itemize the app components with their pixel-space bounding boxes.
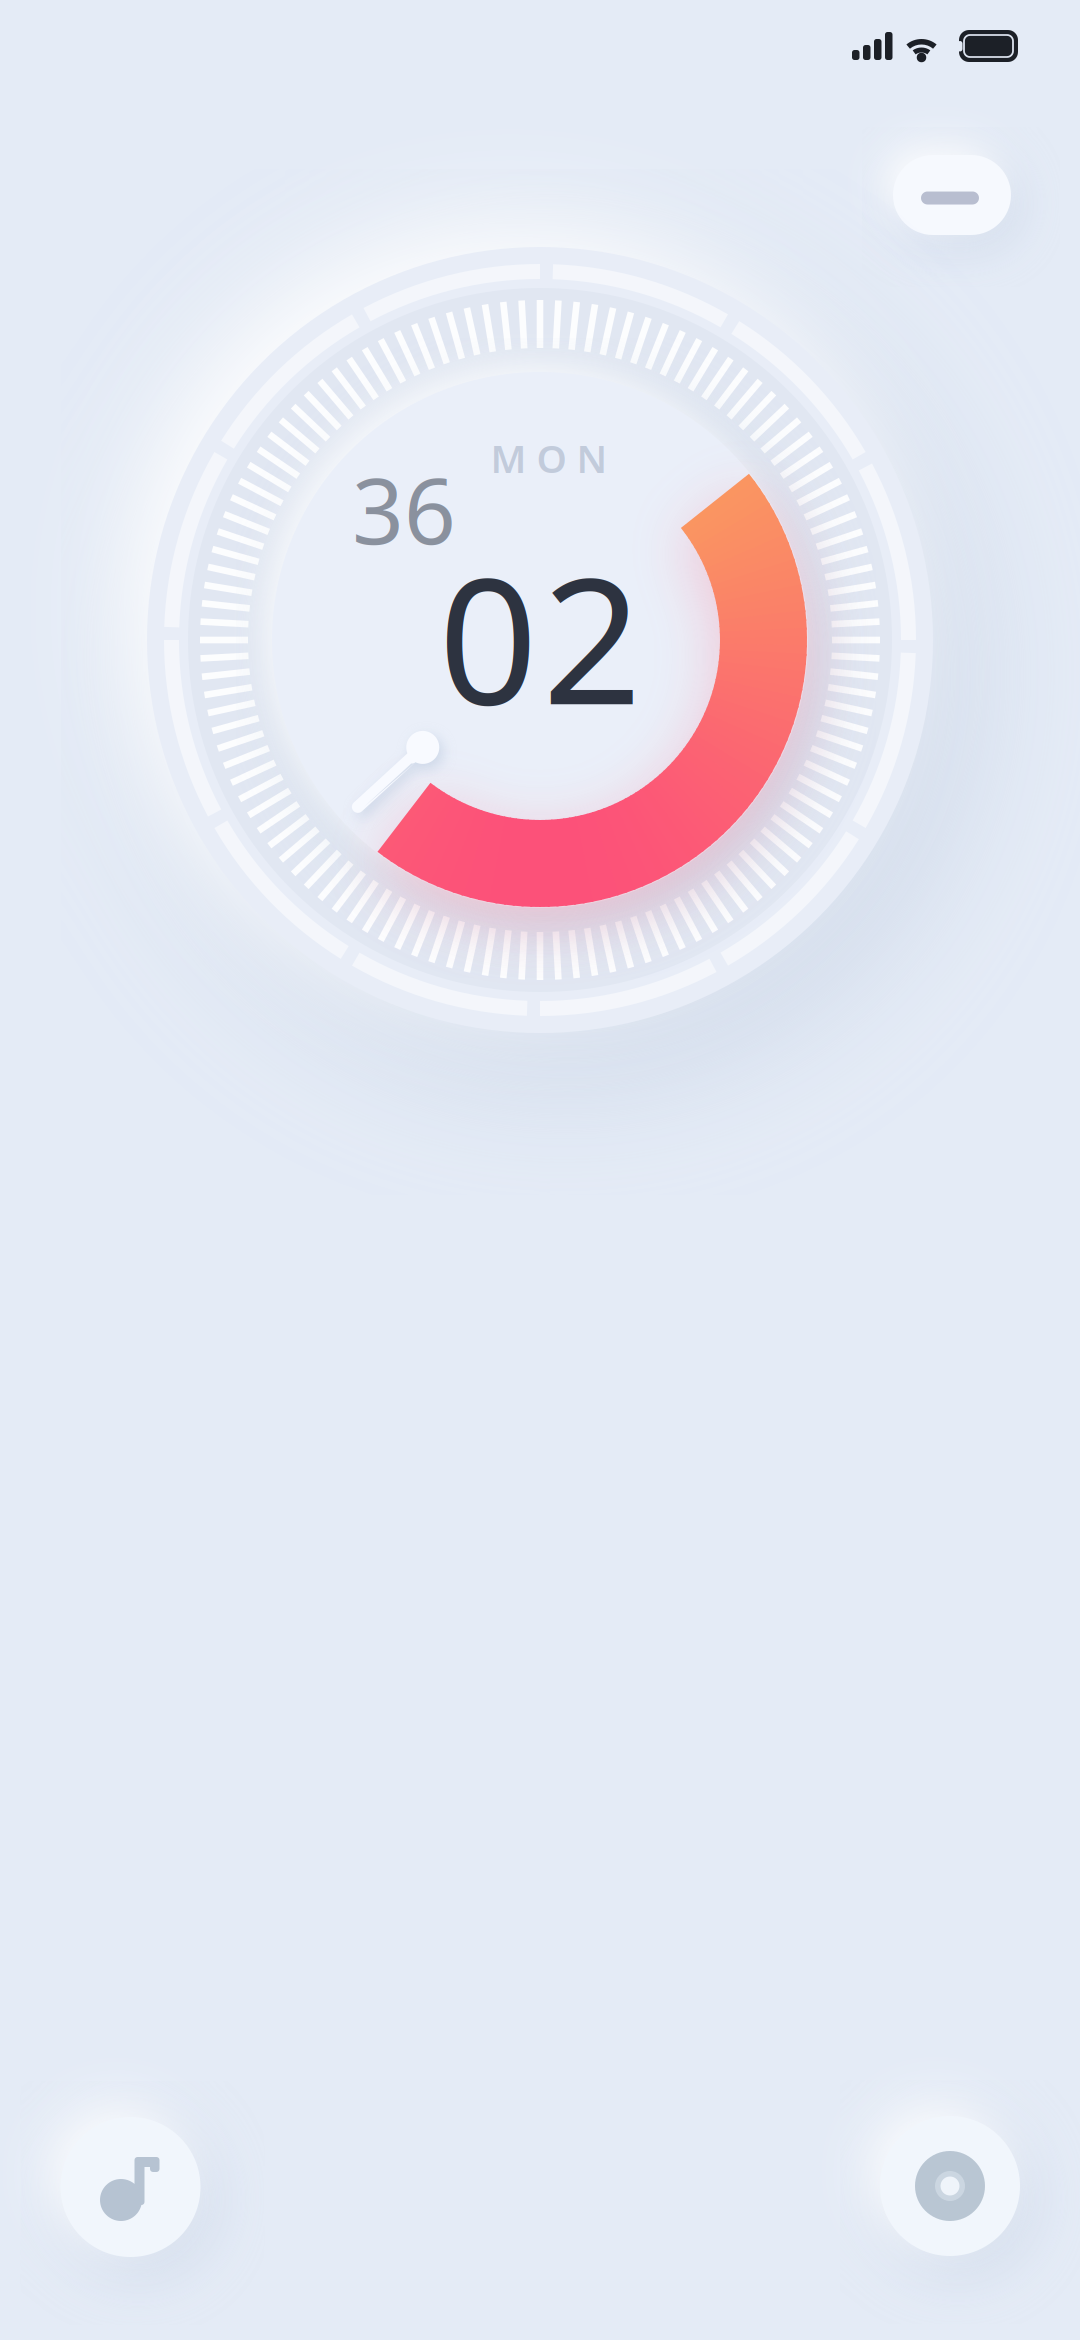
- button[interactable]: Menu: [887, 149, 1017, 241]
- button[interactable]: Music: [50, 2107, 210, 2267]
- staticText: 02: [438, 522, 641, 752]
- button[interactable]: Recordings: [870, 2106, 1030, 2266]
- staticText: MON: [490, 432, 607, 484]
- staticText: 36: [352, 449, 456, 569]
